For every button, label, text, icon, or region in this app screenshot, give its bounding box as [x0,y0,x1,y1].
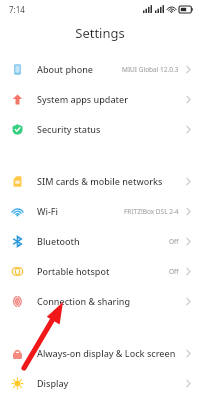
staticText: Settings [75,24,125,42]
staticText: Security status [37,123,101,135]
button[interactable]: Display [0,368,199,398]
staticText: Off [169,267,179,276]
staticText: MIUI Global 12.0.3 [122,65,179,74]
staticText: Always-on display & Lock screen [37,347,176,359]
staticText: SIM cards & mobile networks [37,175,163,187]
staticText: System apps updater [37,93,128,105]
button[interactable]: About phone [0,54,199,84]
staticText: Wi-Fi [37,205,58,217]
button[interactable]: Always-on display & Lock screen [0,338,199,368]
button[interactable]: System apps updater [0,84,199,114]
staticText: 7:14 [9,4,25,15]
other: About phone [12,64,23,75]
staticText: About phone [37,63,93,75]
button[interactable]: SIM cards & mobile networks [0,166,199,196]
staticText: Bluetooth [37,235,80,247]
staticText: Off [169,237,179,246]
button[interactable]: Security status [0,114,199,144]
button[interactable]: Portable hotspot [0,256,199,286]
staticText: Display [37,377,69,389]
staticText: Connection & sharing [37,295,131,307]
button[interactable]: Bluetooth [0,226,199,256]
staticText: FRITZ!Box DSL 2-4 [124,207,179,216]
staticText: Portable hotspot [37,265,110,277]
button[interactable]: Connection & sharing [0,286,199,316]
button[interactable]: Wi-Fi [0,196,199,226]
